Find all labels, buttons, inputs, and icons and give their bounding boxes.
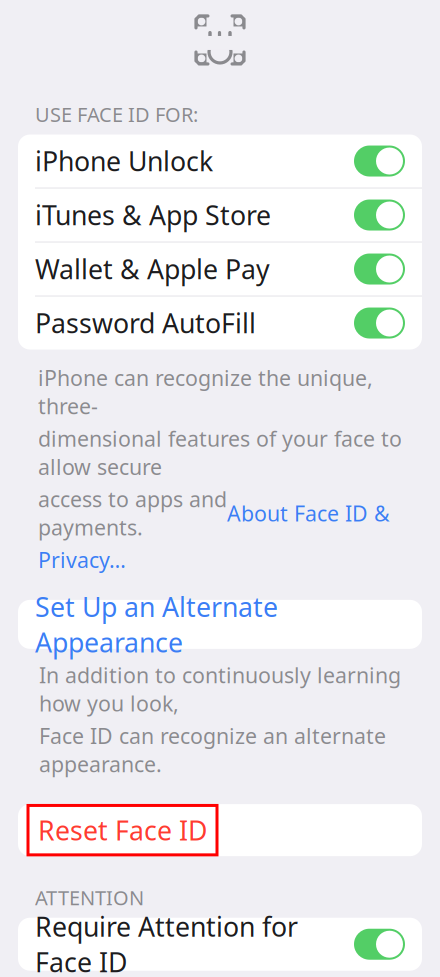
- staticText: access to apps and payments.: [38, 485, 227, 541]
- button[interactable]: Require Attention for Face ID: [18, 918, 422, 971]
- button[interactable]: Password AutoFill: [18, 296, 422, 349]
- staticText: iPhone can recognize the unique, three-: [38, 363, 373, 420]
- button[interactable]: About Face ID &: [227, 499, 390, 527]
- staticText: dimensional features of your face to all…: [38, 424, 402, 481]
- staticText: ATTENTION: [35, 884, 144, 911]
- staticText: Require Attention for Face ID: [35, 909, 298, 977]
- staticText: Wallet & Apple Pay: [35, 251, 270, 287]
- staticText: USE FACE ID FOR:: [35, 101, 198, 128]
- button[interactable]: iTunes & App Store: [18, 188, 422, 241]
- staticText: Reset Face ID: [38, 812, 207, 848]
- button[interactable]: Wallet & Apple Pay: [18, 242, 422, 295]
- staticText: Privacy…: [38, 545, 126, 574]
- button[interactable]: Set Up an Alternate Appearance: [18, 600, 422, 649]
- staticText: In addition to continuously learning how…: [39, 661, 401, 717]
- staticText: Face ID can recognize an alternate appea…: [39, 721, 386, 778]
- staticText: About Face ID &: [227, 499, 390, 527]
- staticText: iPhone Unlock: [35, 143, 213, 179]
- button[interactable]: Reset Face ID: [18, 804, 422, 856]
- button[interactable]: Privacy…: [38, 545, 126, 574]
- staticText: iTunes & App Store: [35, 197, 271, 233]
- staticText: Set Up an Alternate Appearance: [35, 589, 278, 660]
- staticText: Password AutoFill: [35, 305, 256, 341]
- button[interactable]: iPhone Unlock: [18, 134, 422, 187]
